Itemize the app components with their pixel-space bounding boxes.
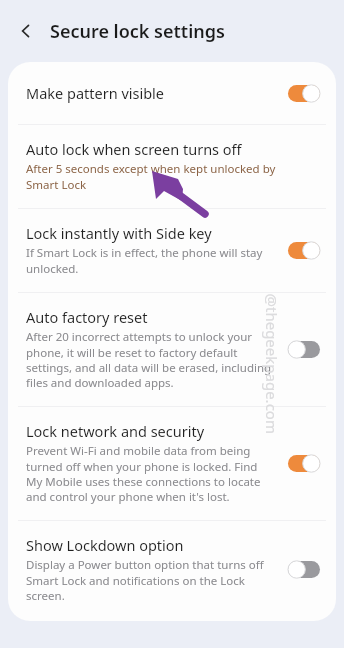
staticText: Lock instantly with Side key <box>26 223 212 243</box>
staticText: After 20 incorrect attempts to unlock yo… <box>26 329 276 390</box>
button[interactable]: Auto lock when screen turns off <box>8 125 336 208</box>
staticText: Make pattern visible <box>26 83 165 103</box>
button[interactable]: Make pattern visible <box>282 78 326 108</box>
staticText: Prevent Wi-Fi and mobile data from being… <box>26 443 276 504</box>
button[interactable]: Show Lockdown option <box>8 521 336 621</box>
button[interactable]: Lock network and security <box>282 448 326 478</box>
button[interactable]: Auto factory reset <box>282 334 326 364</box>
staticText: Secure lock settings <box>50 19 225 44</box>
button[interactable]: Back <box>12 17 40 45</box>
button[interactable]: Lock instantly with Side key <box>8 209 336 292</box>
staticText: Show Lockdown option <box>26 535 184 555</box>
button[interactable]: Lock network and security <box>8 407 336 520</box>
staticText: Auto factory reset <box>26 307 148 327</box>
button[interactable]: Lock instantly with Side key <box>282 235 326 265</box>
staticText: Display a Power button option that turns… <box>26 557 276 603</box>
staticText: Auto lock when screen turns off <box>26 139 242 159</box>
staticText: After 5 seconds except when kept unlocke… <box>26 161 276 192</box>
staticText: If Smart Lock is in effect, the phone wi… <box>26 245 276 276</box>
staticText: Lock network and security <box>26 421 205 441</box>
staticText: @thegeekpage.com <box>261 293 281 434</box>
button[interactable]: Make pattern visible <box>8 62 336 124</box>
button[interactable]: Show Lockdown option <box>282 554 326 584</box>
button[interactable]: Auto factory reset <box>8 293 336 406</box>
